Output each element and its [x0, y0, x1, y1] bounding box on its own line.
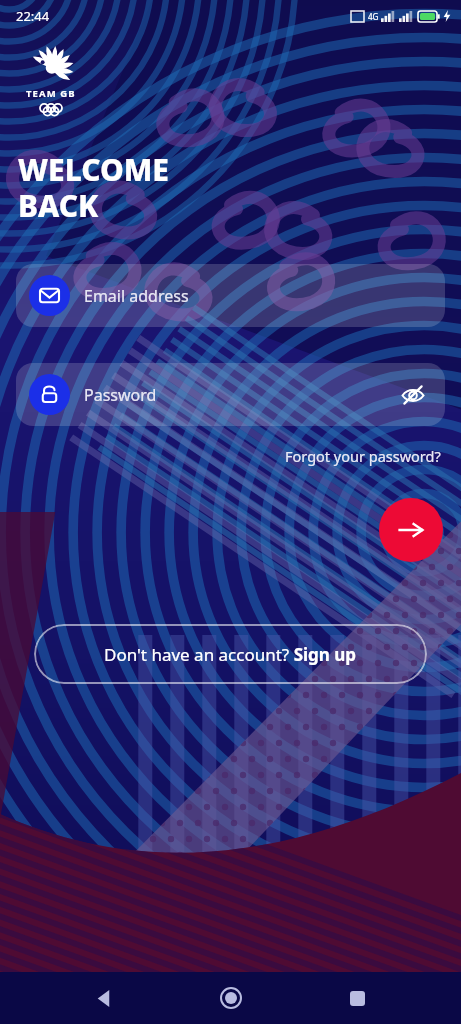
button[interactable]: Don't have an account? Sign up	[34, 624, 427, 684]
button[interactable]: Sign in	[379, 498, 443, 562]
button[interactable]: Recents	[335, 976, 379, 1020]
staticText: Password	[84, 384, 157, 406]
staticText: 4G	[368, 11, 379, 22]
button[interactable]: Forgot your password?	[281, 442, 445, 470]
staticText: WELCOME BACK	[18, 149, 169, 226]
button[interactable]: Email address	[16, 264, 445, 327]
button[interactable]: Password	[16, 363, 445, 426]
staticText: 22:44	[16, 7, 50, 25]
staticText: Email address	[84, 285, 189, 307]
staticText: Don't have an account? Sign up	[104, 643, 357, 666]
button[interactable]: Show password	[394, 376, 432, 414]
button[interactable]: Home	[209, 976, 253, 1020]
button[interactable]: Back	[82, 976, 126, 1020]
staticText: TEAM GB	[26, 87, 76, 100]
staticText: Forgot your password?	[285, 446, 441, 466]
